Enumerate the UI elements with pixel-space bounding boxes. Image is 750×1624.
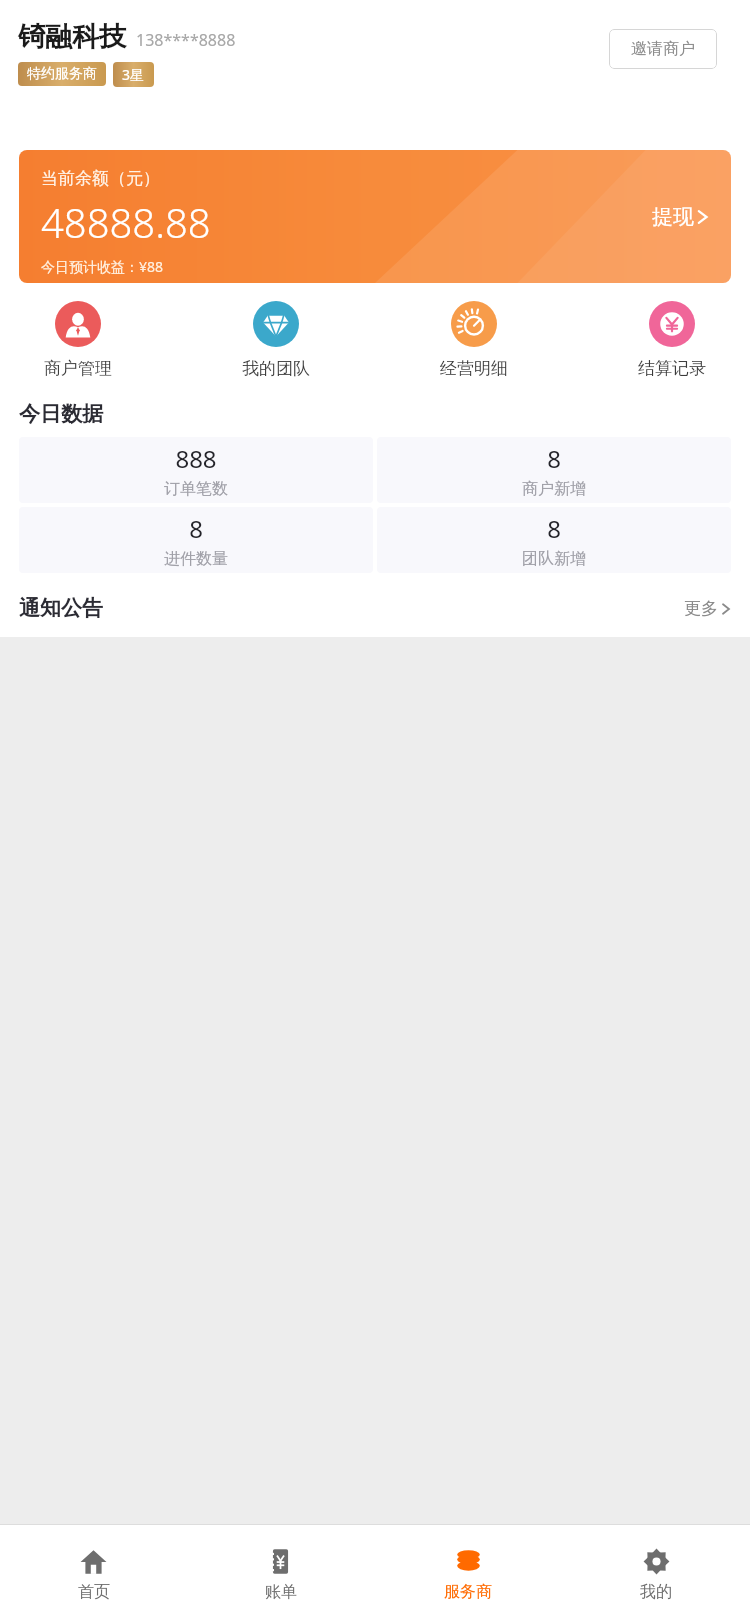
staticText: 更多 xyxy=(684,598,718,619)
button[interactable]: 账单 xyxy=(187,1525,374,1624)
button[interactable]: 8 xyxy=(377,437,731,503)
staticText: 经营明细 xyxy=(440,358,508,379)
staticText: 8 xyxy=(189,512,203,545)
staticText: 138****8888 xyxy=(136,29,236,51)
staticText: 我的团队 xyxy=(242,358,310,379)
staticText: 今日预计收益：¥88 xyxy=(41,257,164,276)
button[interactable]: 提现 xyxy=(652,204,709,230)
staticText: 888 xyxy=(175,442,217,475)
staticText: 今日数据 xyxy=(19,401,103,427)
staticText: 8 xyxy=(547,512,561,545)
staticText: 结算记录 xyxy=(638,358,706,379)
button[interactable]: 888 xyxy=(19,437,373,503)
button[interactable]: 我的 xyxy=(562,1525,750,1624)
button[interactable]: 首页 xyxy=(0,1525,187,1624)
button[interactable]: 8 xyxy=(19,507,373,573)
staticText: 订单笔数 xyxy=(164,479,228,499)
staticText: 通知公告 xyxy=(19,595,103,621)
staticText: 账单 xyxy=(265,1582,297,1602)
staticText: 48888.88 xyxy=(41,195,211,249)
staticText: 首页 xyxy=(78,1582,110,1602)
staticText: 锜融科技 xyxy=(18,20,126,54)
staticText: 服务商 xyxy=(444,1582,492,1602)
staticText: 进件数量 xyxy=(164,549,228,569)
button[interactable]: 邀请商户 xyxy=(609,29,717,69)
button[interactable]: 更多 xyxy=(684,598,731,619)
button[interactable]: 当前余额（元） xyxy=(19,150,731,283)
staticText: 邀请商户 xyxy=(631,39,695,59)
button[interactable]: 商户管理 xyxy=(18,301,138,379)
staticText: 3星 xyxy=(122,65,145,84)
staticText: 提现 xyxy=(652,204,694,230)
staticText: 商户管理 xyxy=(44,358,112,379)
button[interactable]: 我的团队 xyxy=(216,301,336,379)
button[interactable]: 结算记录 xyxy=(612,301,732,379)
staticText: 特约服务商 xyxy=(27,65,97,83)
button[interactable]: 服务商 xyxy=(374,1525,562,1624)
button[interactable]: 经营明细 xyxy=(414,301,534,379)
button[interactable]: 8 xyxy=(377,507,731,573)
staticText: 8 xyxy=(547,442,561,475)
staticText: 团队新增 xyxy=(522,549,586,569)
staticText: 当前余额（元） xyxy=(41,168,160,189)
staticText: 我的 xyxy=(640,1582,672,1602)
staticText: 商户新增 xyxy=(522,479,586,499)
